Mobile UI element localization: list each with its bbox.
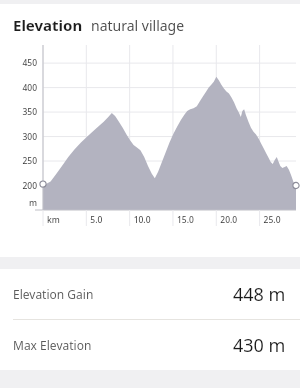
staticText: Max Elevation [13,337,92,353]
button[interactable]: Elevation Gain [0,269,300,319]
button[interactable]: Elevation [0,4,300,257]
staticText: 430 m [233,333,286,358]
staticText: Elevation [13,15,83,35]
staticText: Elevation Gain [13,286,94,302]
staticText: 448 m [233,282,286,307]
button[interactable]: Max Elevation [0,320,300,370]
staticText: natural village [91,16,185,35]
